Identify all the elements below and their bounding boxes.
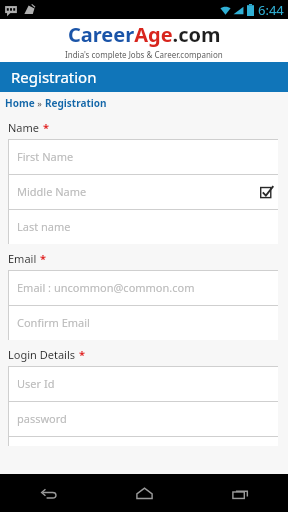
button[interactable]: User Id (8, 366, 278, 401)
staticText: Middle Name (17, 184, 87, 199)
staticText: Name (8, 120, 40, 135)
staticText: Registration (45, 96, 107, 110)
button[interactable]: Back (0, 474, 96, 512)
staticText: 6:44 (258, 1, 284, 19)
button[interactable]: Valid (260, 185, 274, 199)
staticText: First Name (17, 149, 74, 164)
staticText: Home (5, 96, 35, 110)
staticText: Email : uncommon@common.com (17, 280, 195, 295)
staticText: » (35, 97, 45, 109)
staticText: * (43, 120, 49, 135)
staticText: * (40, 251, 46, 266)
button[interactable]: Home (96, 474, 192, 512)
button[interactable]: Confirm Email (8, 305, 278, 340)
staticText: CareerAge.com (68, 21, 221, 48)
button[interactable]: Middle Name (8, 174, 278, 209)
staticText: password (17, 411, 67, 426)
staticText: Last name (17, 219, 71, 234)
button[interactable]: Registration (0, 62, 288, 92)
staticText: Confirm Email (17, 315, 90, 330)
button[interactable]: password (8, 401, 278, 436)
staticText: India's complete Jobs & Career.companion (65, 49, 223, 60)
staticText: Login Details (8, 347, 76, 362)
staticText: Registration (11, 67, 97, 87)
button[interactable]: First Name (8, 139, 278, 174)
button[interactable]: Home (5, 96, 35, 110)
button[interactable]: Registration (45, 96, 107, 110)
button[interactable]: Email : uncommon@common.com (8, 270, 278, 305)
button[interactable]: Recent apps (192, 474, 288, 512)
staticText: User Id (17, 376, 55, 391)
staticText: Email (8, 251, 37, 266)
staticText: * (79, 347, 85, 362)
button[interactable]: Last name (8, 209, 278, 244)
